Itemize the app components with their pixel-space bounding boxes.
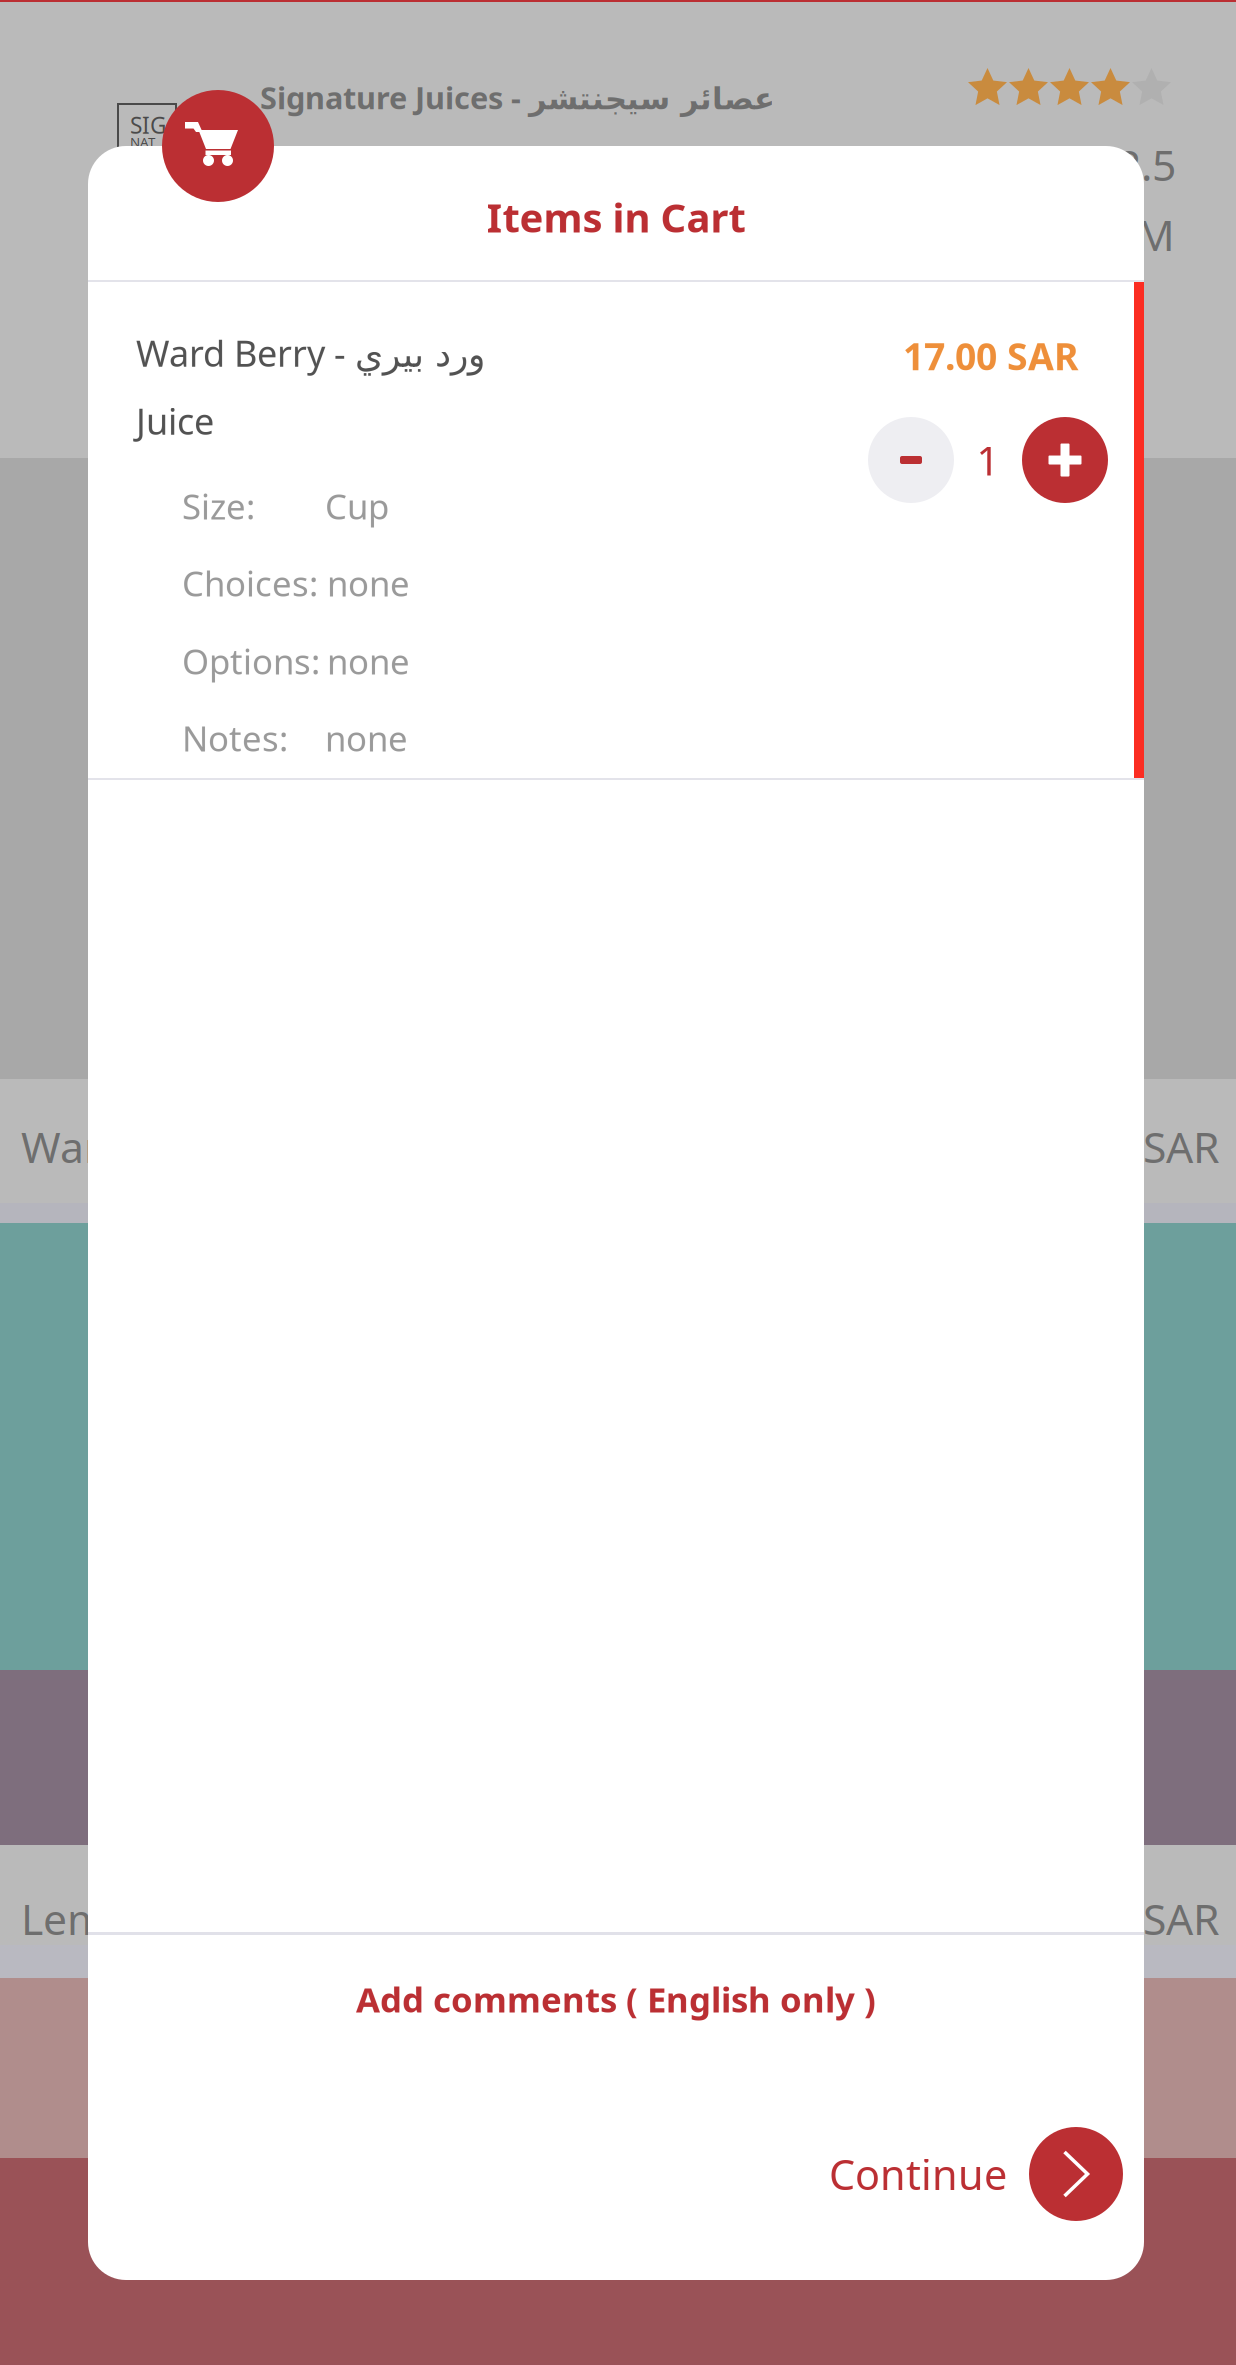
button[interactable]: Cart xyxy=(162,90,274,202)
staticText: SAR xyxy=(1143,1118,1220,1175)
staticText: Signature Juices - عصائر سيجنتشر xyxy=(260,77,775,118)
staticText: none xyxy=(327,560,410,606)
staticText: Ward xyxy=(21,1118,127,1175)
staticText: Choices: xyxy=(182,560,318,606)
staticText: Lem xyxy=(21,1890,107,1947)
staticText: Items in Cart xyxy=(486,190,745,243)
staticText: Notes: xyxy=(182,715,288,761)
staticText: SAR xyxy=(1143,1890,1220,1947)
staticText: none xyxy=(327,638,410,684)
staticText: NAT xyxy=(130,133,155,151)
staticText: Juice xyxy=(136,397,214,445)
staticText: SIG xyxy=(130,110,167,140)
staticText: Size: xyxy=(182,483,255,529)
button[interactable]: Add comments ( English only ) xyxy=(88,1939,1144,2059)
staticText: Continue xyxy=(829,2147,1007,2201)
button[interactable]: Increase quantity xyxy=(1022,417,1108,503)
staticText: Cup xyxy=(325,483,389,529)
button[interactable]: Decrease quantity xyxy=(868,417,954,503)
staticText: 2.5 xyxy=(1117,136,1176,193)
staticText: 1 xyxy=(976,433,999,486)
staticText: none xyxy=(325,715,408,761)
staticText: Options: xyxy=(182,638,320,684)
staticText: Ward Berry - ورد بيري xyxy=(136,329,485,377)
button[interactable]: Continue xyxy=(88,2109,1144,2239)
staticText: 17.00 SAR xyxy=(903,331,1078,381)
staticText: Add comments ( English only ) xyxy=(356,1976,876,2022)
staticText: PM xyxy=(1110,206,1175,263)
